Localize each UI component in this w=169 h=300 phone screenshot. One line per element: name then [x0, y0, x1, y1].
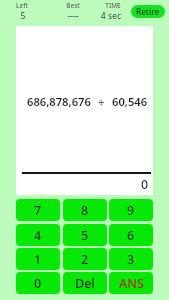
staticText: 7: [34, 202, 42, 219]
staticText: ANS: [119, 275, 144, 292]
staticText: ----: [38, 10, 108, 22]
staticText: Retire: [136, 6, 160, 17]
staticText: Best: [38, 1, 108, 10]
staticText: TIME: [78, 1, 148, 10]
button[interactable]: Del: [63, 272, 107, 294]
staticText: Left: [0, 1, 57, 10]
staticText: 6: [127, 227, 135, 244]
staticText: 3: [127, 251, 135, 268]
staticText: Del: [75, 275, 95, 292]
button[interactable]: 2: [63, 248, 107, 270]
button[interactable]: 9: [109, 199, 153, 221]
button[interactable]: 0: [16, 272, 60, 294]
staticText: 4: [34, 227, 42, 244]
staticText: 686,878,676: [27, 94, 91, 109]
button[interactable]: 4: [16, 224, 60, 246]
button[interactable]: 3: [109, 248, 153, 270]
button[interactable]: 1: [16, 248, 60, 270]
staticText: ÷: [98, 94, 105, 109]
staticText: 0: [80, 176, 148, 193]
staticText: 4 sec: [76, 10, 146, 22]
button[interactable]: 6: [109, 224, 153, 246]
staticText: 2: [81, 251, 89, 268]
staticText: 1: [34, 251, 42, 268]
staticText: 60,546: [112, 94, 148, 109]
staticText: 0: [34, 275, 42, 292]
button[interactable]: Retire: [131, 5, 165, 18]
button[interactable]: 7: [16, 199, 60, 221]
staticText: 8: [81, 202, 89, 219]
button[interactable]: ANS: [109, 272, 153, 294]
staticText: 5: [81, 227, 89, 244]
staticText: 9: [127, 202, 135, 219]
button[interactable]: 8: [63, 199, 107, 221]
staticText: 5: [0, 10, 58, 22]
button[interactable]: 5: [63, 224, 107, 246]
